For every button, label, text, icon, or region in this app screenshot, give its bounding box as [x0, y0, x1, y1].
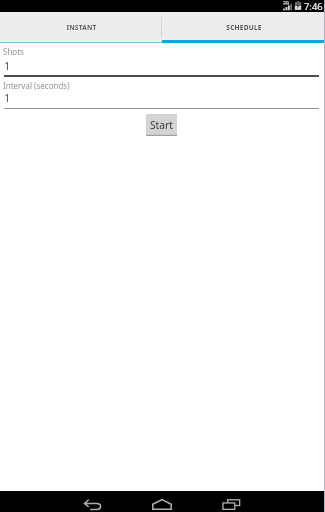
staticText: Interval (seconds): [3, 80, 70, 91]
button[interactable]: INSTANT: [0, 12, 162, 40]
staticText: 1: [4, 58, 11, 73]
button[interactable]: SCHEDULE: [162, 12, 325, 40]
staticText: Shots: [3, 46, 24, 57]
staticText: 7:46: [304, 0, 323, 12]
staticText: Start: [150, 118, 173, 132]
button[interactable]: Back: [70, 491, 115, 512]
button[interactable]: Home: [139, 491, 184, 512]
staticText: INSTANT: [66, 23, 97, 32]
button[interactable]: Start: [146, 114, 177, 136]
staticText: SCHEDULE: [226, 23, 262, 32]
button[interactable]: Recent apps: [209, 491, 254, 512]
staticText: 1: [4, 90, 11, 105]
